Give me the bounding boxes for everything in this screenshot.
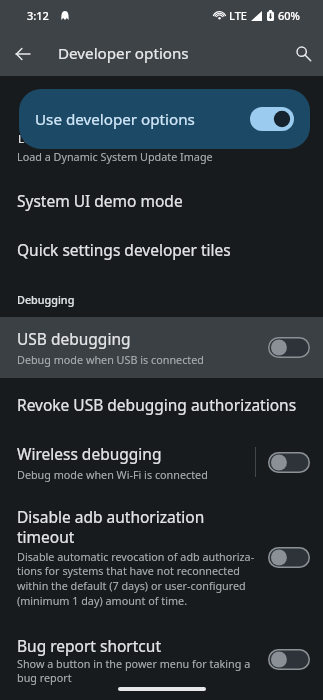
staticText: Load dynamic system (18, 131, 135, 147)
staticText: Disable automatic revocation of adb auth… (17, 549, 255, 609)
button[interactable]: Bug report shortcut (0, 628, 323, 692)
button[interactable]: Quick settings developer tiles (0, 231, 323, 267)
staticText: Revoke USB debugging authorizations (17, 394, 297, 415)
staticText: Use developer options (35, 109, 250, 130)
staticText: Debug mode when USB is connected (17, 352, 204, 367)
staticText: LTE (229, 8, 247, 23)
button[interactable]: Disable adb authorization timeout (0, 496, 323, 618)
staticText: System UI demo mode (17, 190, 183, 211)
button[interactable]: Use developer options (19, 89, 310, 149)
button[interactable]: USB debugging (0, 317, 323, 378)
staticText: Debugging (17, 292, 75, 307)
staticText: Quick settings developer tiles (17, 239, 231, 260)
button[interactable]: System UI demo mode (0, 182, 323, 218)
staticText: Wireless debugging (17, 443, 162, 464)
button[interactable]: Revoke USB debugging authorizations (0, 386, 323, 422)
staticText: USB debugging (17, 328, 131, 349)
button[interactable]: Wireless debugging (0, 434, 323, 490)
staticText: Disable adb authorization timeout (17, 506, 205, 548)
button[interactable]: Search (288, 38, 319, 69)
staticText: Show a button in the power menu for taki… (17, 656, 251, 686)
staticText: Bug report shortcut (17, 635, 161, 656)
staticText: 60% (278, 8, 300, 23)
staticText: 3:12 (27, 8, 49, 23)
staticText: Developer options (58, 43, 189, 64)
button[interactable]: Back (7, 38, 38, 69)
staticText: Debug mode when Wi-Fi is connected (17, 467, 208, 482)
staticText: Load a Dynamic System Update Image (17, 149, 213, 164)
